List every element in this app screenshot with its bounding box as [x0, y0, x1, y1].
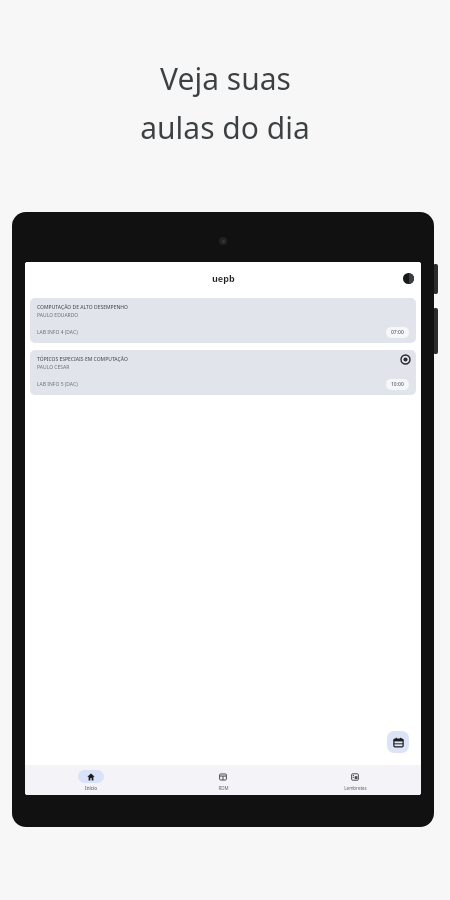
- button[interactable]: Opções da aula: [401, 355, 410, 364]
- button[interactable]: Início: [25, 765, 157, 795]
- staticText: PAULO EDUARDO: [37, 312, 79, 319]
- staticText: Início: [85, 785, 97, 791]
- staticText: LAB INFO 4 (DAC): [37, 329, 78, 336]
- staticText: uepb: [212, 272, 235, 284]
- button[interactable]: COMPUTAÇÃO DE ALTO DESEMPENHO: [30, 298, 416, 343]
- staticText: Veja suas: [160, 58, 291, 99]
- button[interactable]: uepb: [212, 272, 235, 284]
- staticText: PAULO CESAR: [37, 364, 70, 371]
- staticText: 10:00: [391, 381, 404, 388]
- staticText: Lembretes: [344, 785, 367, 791]
- staticText: aulas do dia: [140, 107, 310, 148]
- staticText: COMPUTAÇÃO DE ALTO DESEMPENHO: [37, 304, 128, 311]
- staticText: TÓPICOS ESPECIAIS EM COMPUTAÇÃO: [37, 356, 128, 363]
- button[interactable]: RDM: [157, 765, 289, 795]
- button[interactable]: Lembretes: [289, 765, 421, 795]
- button[interactable]: Calendário: [387, 731, 409, 753]
- staticText: 07:00: [391, 329, 404, 336]
- staticText: LAB INFO 5 (DAC): [37, 381, 78, 388]
- button[interactable]: Perfil: [403, 273, 414, 284]
- button[interactable]: TÓPICOS ESPECIAIS EM COMPUTAÇÃO: [30, 350, 416, 395]
- staticText: RDM: [218, 785, 229, 791]
